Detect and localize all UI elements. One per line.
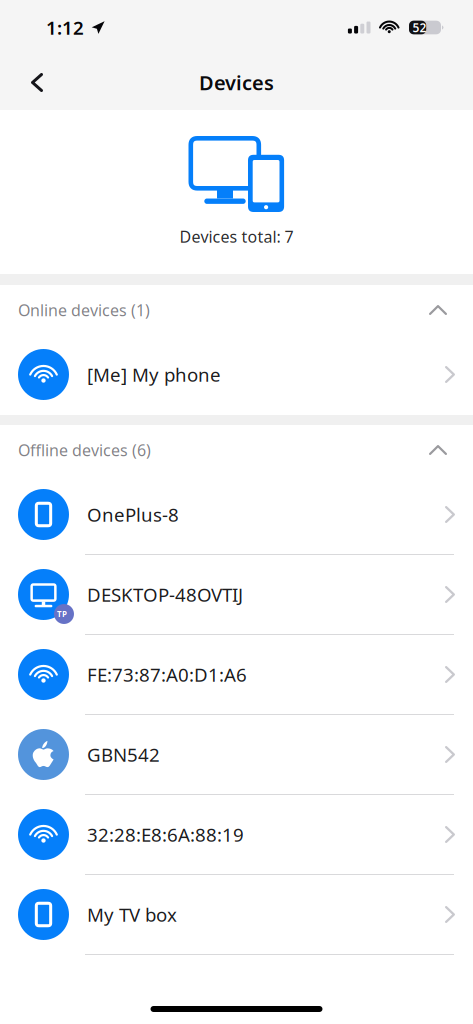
staticText: Devices total: 7 bbox=[179, 226, 293, 247]
staticText: Offline devices (6) bbox=[18, 439, 151, 461]
staticText: 32:28:E8:6A:88:19 bbox=[87, 822, 244, 847]
staticText: Online devices (1) bbox=[18, 299, 150, 321]
button[interactable]: TP bbox=[0, 555, 473, 635]
button[interactable]: 32:28:E8:6A:88:19 bbox=[0, 795, 473, 875]
button[interactable]: Back bbox=[14, 59, 60, 105]
staticText: 1:12 bbox=[46, 15, 84, 40]
staticText: TP bbox=[57, 609, 67, 619]
staticText: DESKTOP-48OVTIJ bbox=[87, 582, 243, 607]
button[interactable]: GBN542 bbox=[0, 715, 473, 795]
button[interactable]: [Me] My phone bbox=[0, 335, 473, 415]
staticText: [Me] My phone bbox=[87, 362, 221, 387]
button[interactable]: FE:73:87:A0:D1:A6 bbox=[0, 635, 473, 715]
staticText: GBN542 bbox=[87, 742, 160, 767]
staticText: OnePlus-8 bbox=[87, 502, 179, 527]
button[interactable]: My TV box bbox=[0, 875, 473, 955]
staticText: FE:73:87:A0:D1:A6 bbox=[87, 662, 247, 687]
staticText: 52 bbox=[413, 19, 427, 35]
button[interactable]: OnePlus-8 bbox=[0, 475, 473, 555]
button[interactable]: Collapse Online devices (1) bbox=[415, 289, 461, 331]
staticText: My TV box bbox=[87, 902, 177, 927]
button[interactable]: Collapse Offline devices (6) bbox=[415, 429, 461, 471]
staticText: Devices bbox=[199, 69, 274, 96]
